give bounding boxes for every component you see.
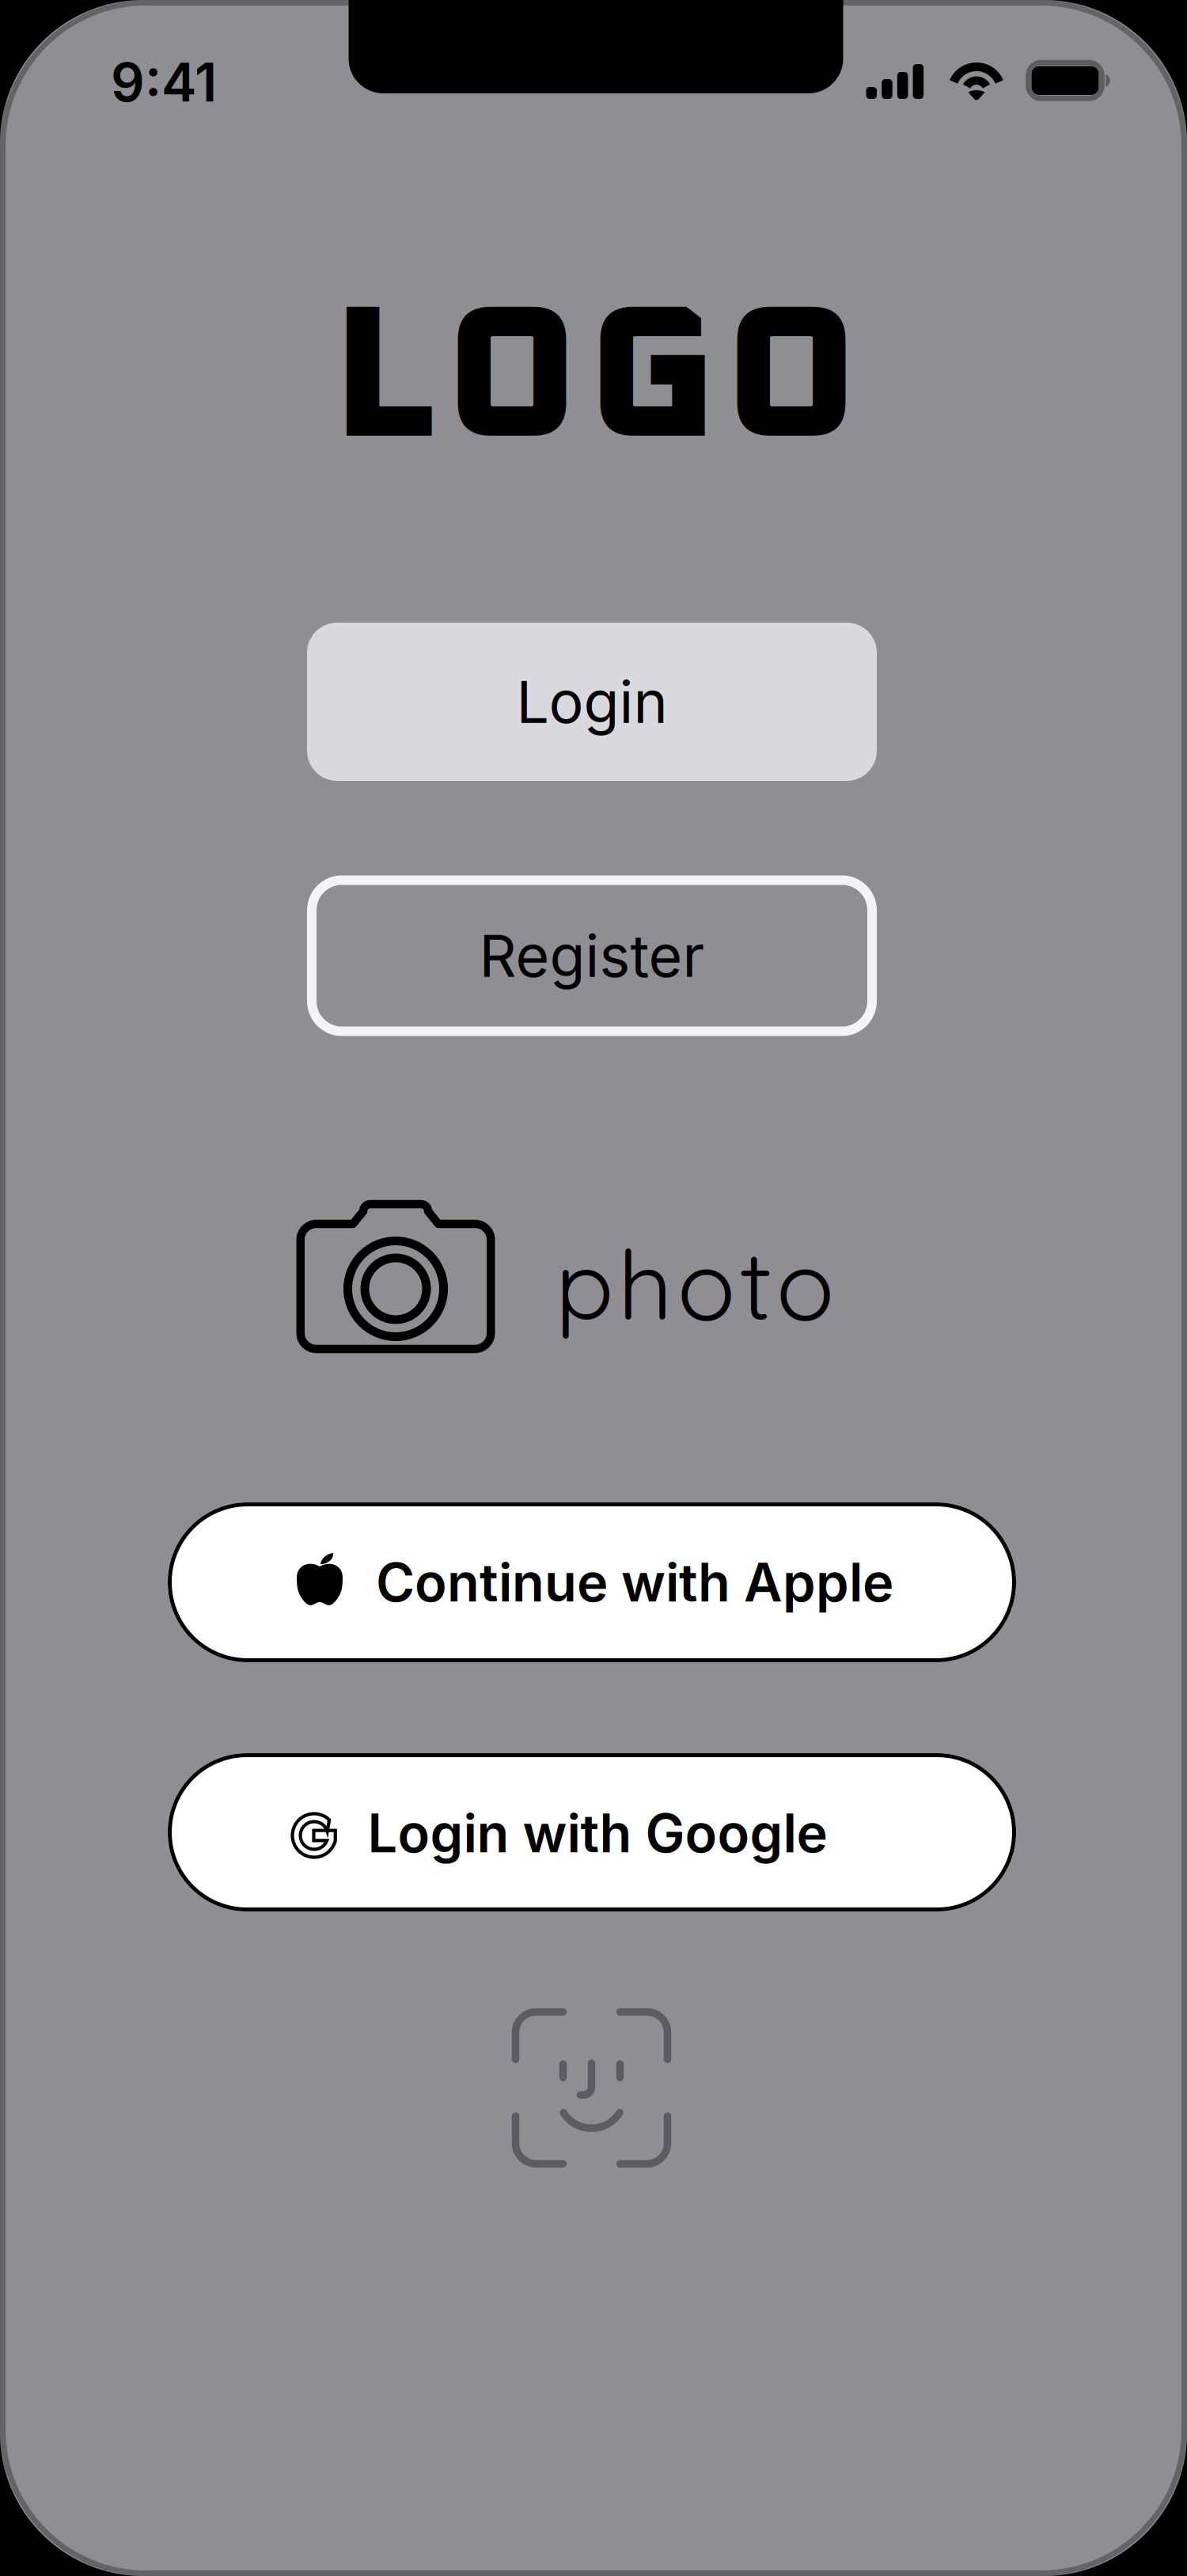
staticText: Register <box>479 921 705 991</box>
staticText: Login with Google <box>368 1801 827 1865</box>
button[interactable]: Login with Google <box>168 1753 1016 1911</box>
button[interactable]: Register <box>307 875 877 1036</box>
staticText: 9:41 <box>111 50 217 114</box>
staticText: Continue with Apple <box>376 1550 893 1614</box>
staticText: Login <box>516 667 667 737</box>
button[interactable]: Login <box>307 623 877 781</box>
staticText: LOGO <box>332 287 858 475</box>
button[interactable]: Face ID <box>516 2012 667 2164</box>
staticText: photo <box>555 1223 834 1344</box>
button[interactable]: Continue with Apple <box>168 1502 1016 1662</box>
